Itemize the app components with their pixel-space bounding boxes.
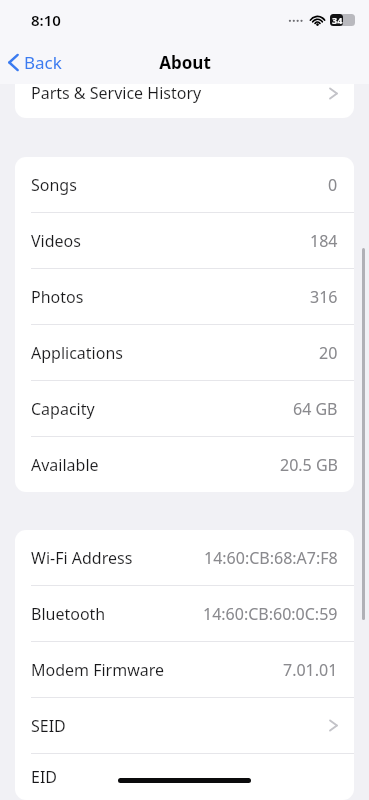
staticText: SEID [31, 715, 66, 737]
staticText: Parts & Service History [31, 84, 202, 104]
staticText: Back [24, 51, 62, 74]
button[interactable]: Back [0, 47, 70, 78]
staticText: 7.01.01 [283, 659, 338, 681]
button[interactable]: Applications [15, 325, 354, 380]
button[interactable]: Videos [15, 213, 354, 268]
button[interactable]: Songs [15, 157, 354, 212]
button[interactable]: Available [15, 437, 354, 492]
staticText: 8:10 [31, 10, 61, 30]
staticText: Applications [31, 342, 123, 364]
staticText: 20.5 GB [280, 454, 338, 476]
staticText: 64 GB [293, 398, 338, 420]
staticText: Modem Firmware [31, 659, 165, 681]
staticText: 14:60:CB:60:0C:59 [203, 603, 338, 625]
button[interactable]: Wi-Fi Address [15, 530, 354, 585]
button[interactable]: Modem Firmware [15, 642, 354, 697]
staticText: Photos [31, 286, 84, 308]
staticText: 34 [332, 14, 343, 26]
staticText: Videos [31, 230, 81, 252]
button[interactable]: Capacity [15, 381, 354, 436]
button[interactable]: Parts & Service History [15, 84, 354, 118]
staticText: 20 [319, 342, 338, 364]
staticText: 0 [328, 174, 338, 196]
staticText: 14:60:CB:68:A7:F8 [204, 547, 338, 569]
staticText: 316 [310, 286, 338, 308]
button[interactable]: EID [15, 754, 354, 800]
staticText: Songs [31, 174, 77, 196]
staticText: Bluetooth [31, 603, 106, 625]
staticText: About [159, 51, 211, 74]
staticText: Capacity [31, 398, 95, 420]
button[interactable]: Photos [15, 269, 354, 324]
button[interactable]: SEID [15, 698, 354, 753]
staticText: Available [31, 454, 99, 476]
staticText: EID [31, 766, 58, 788]
staticText: Wi-Fi Address [31, 547, 133, 569]
button[interactable]: Bluetooth [15, 586, 354, 641]
staticText: 184 [310, 230, 338, 252]
